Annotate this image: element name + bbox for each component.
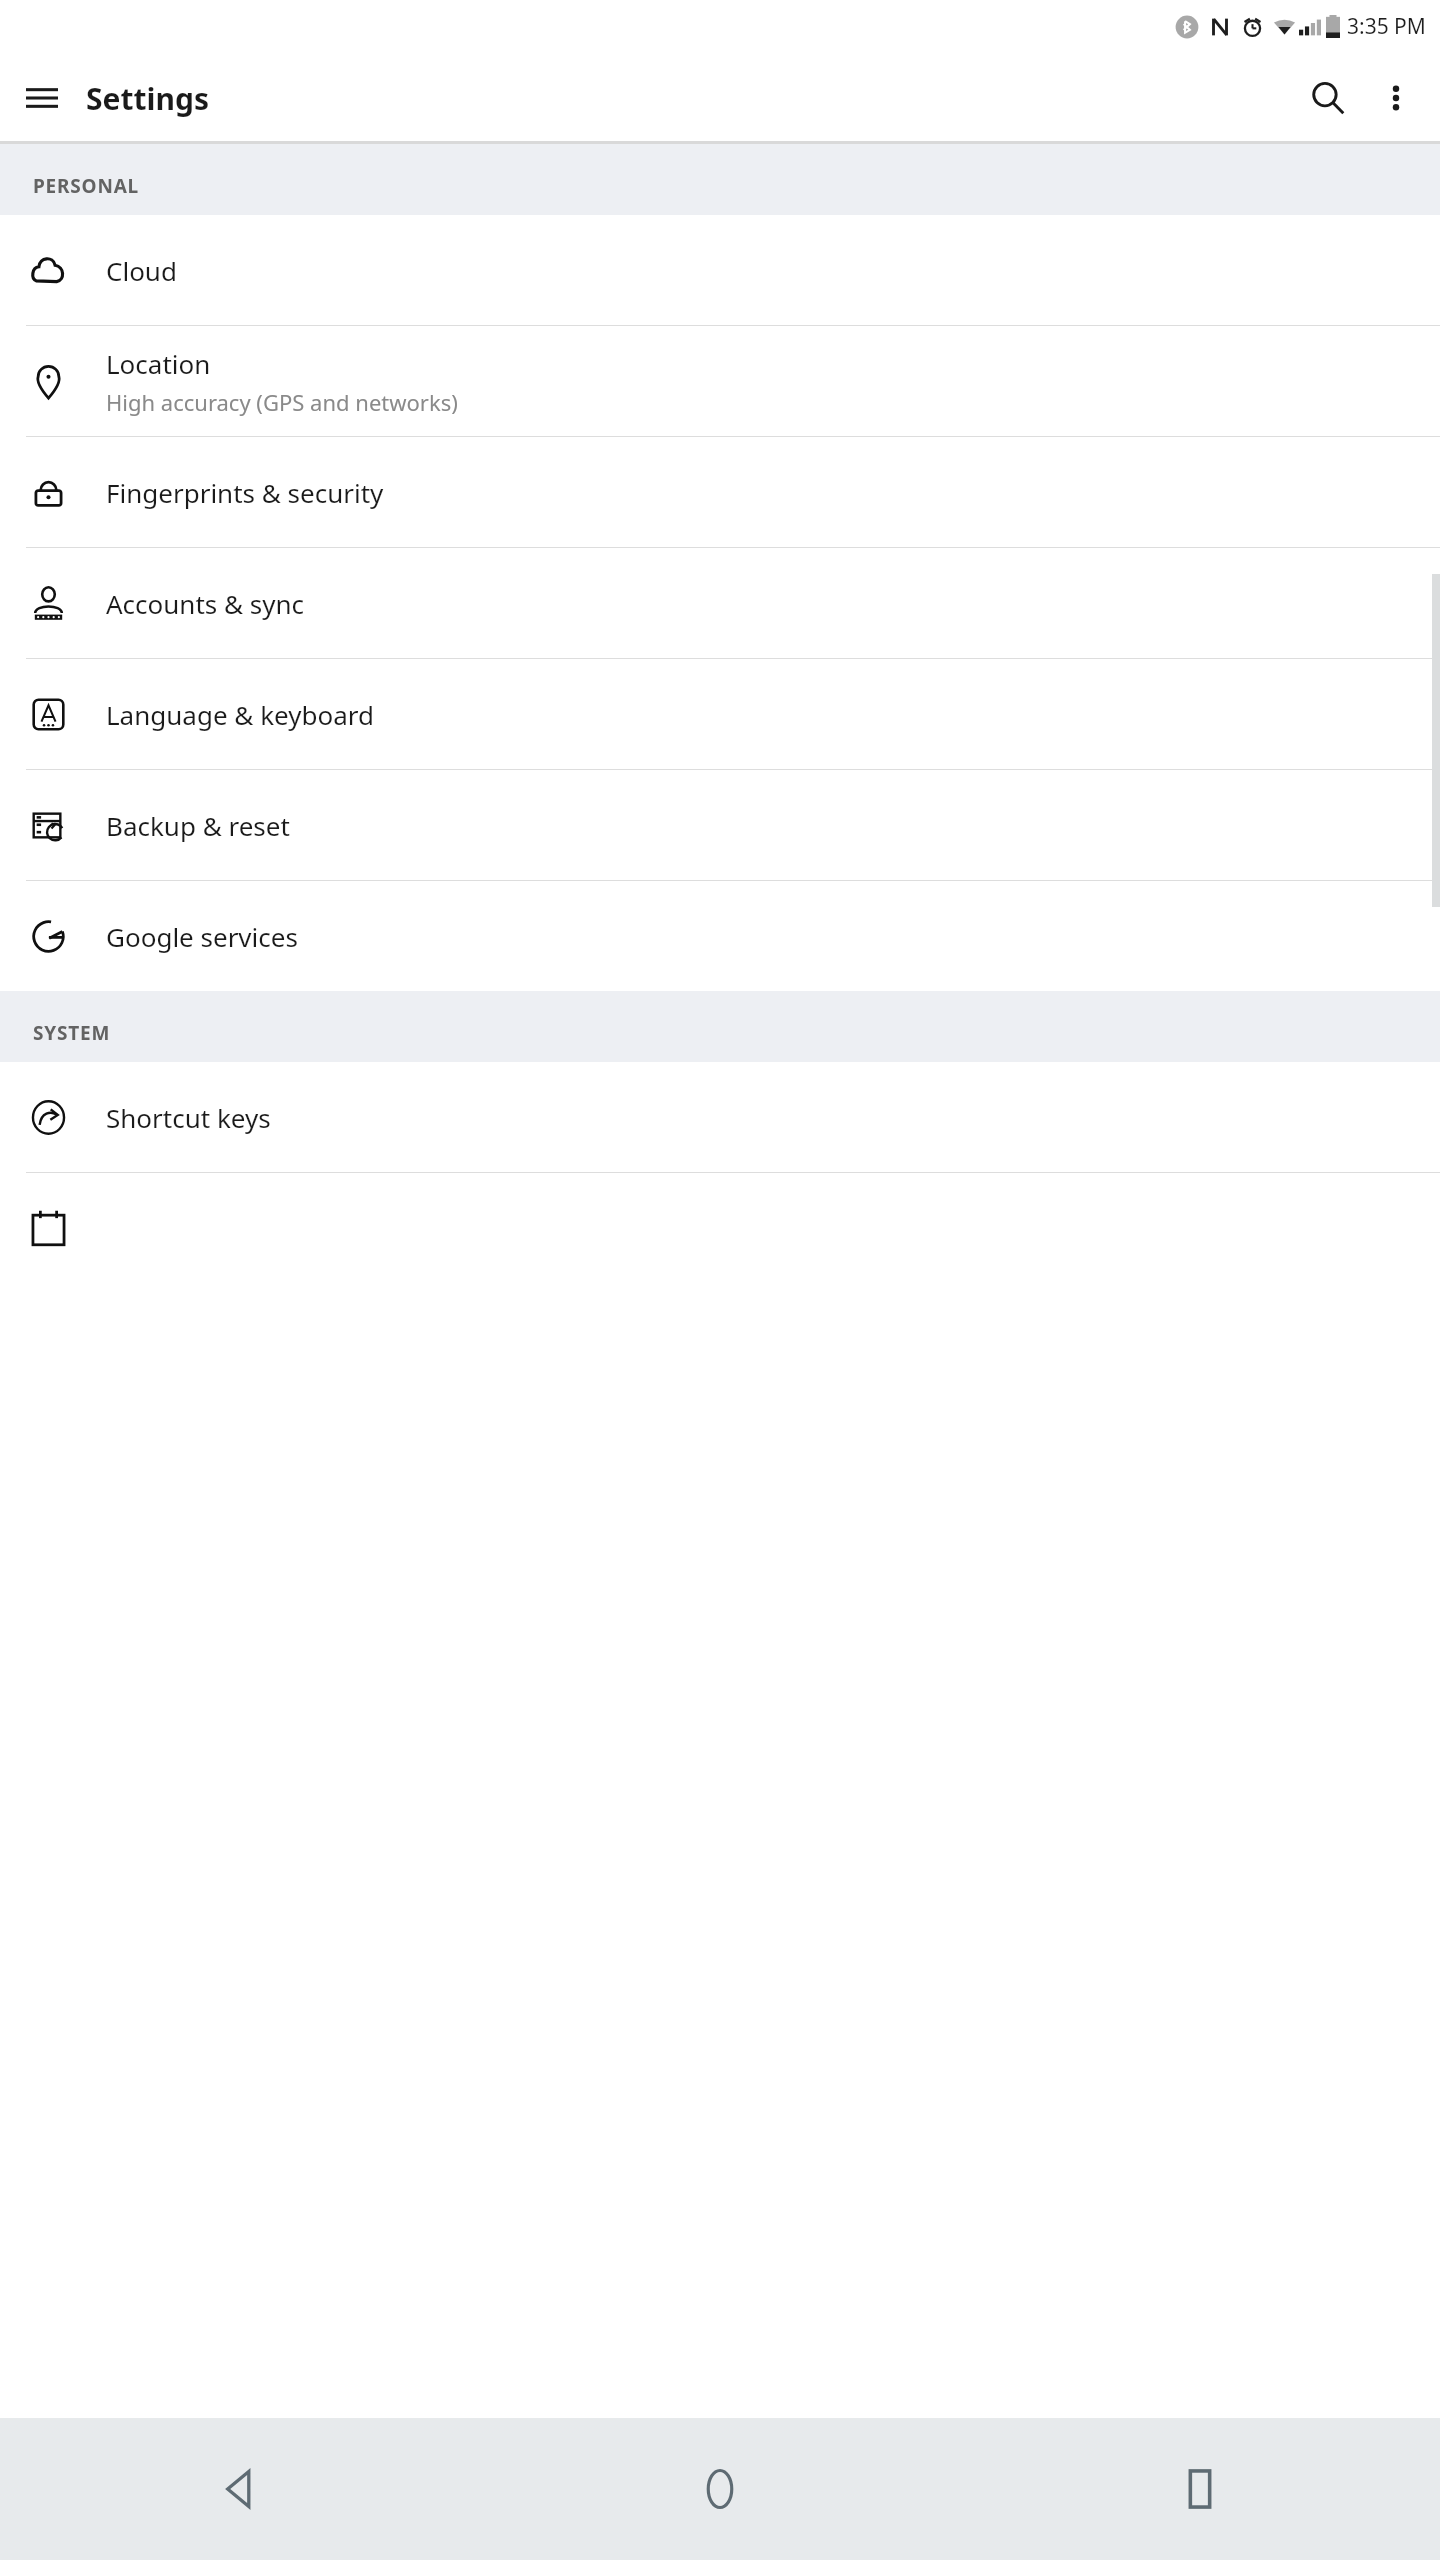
button[interactable]: Home [480, 2418, 960, 2560]
staticText: Cloud [106, 253, 177, 288]
staticText: Fingerprints & security [106, 475, 384, 510]
staticText: Location [106, 346, 211, 381]
staticText: Shortcut keys [106, 1100, 271, 1135]
button[interactable]: Recent apps [960, 2418, 1440, 2560]
button[interactable] [0, 1173, 1440, 1283]
button[interactable]: Navigation drawer [14, 70, 70, 126]
button[interactable]: Google services [0, 881, 1440, 991]
button[interactable]: Backup & reset [0, 770, 1440, 880]
button[interactable]: Search [1292, 62, 1364, 134]
button[interactable]: Language & keyboard [0, 659, 1440, 769]
staticText: Settings [86, 78, 209, 119]
staticText: PERSONAL [33, 173, 140, 199]
staticText: Language & keyboard [106, 697, 374, 732]
staticText: SYSTEM [33, 1020, 111, 1046]
button[interactable]: Location [0, 326, 1440, 436]
staticText: High accuracy (GPS and networks) [106, 387, 458, 417]
staticText: Accounts & sync [106, 586, 305, 621]
button[interactable]: Back [0, 2418, 480, 2560]
staticText: Backup & reset [106, 808, 290, 843]
staticText: Google services [106, 919, 298, 954]
button[interactable]: Accounts & sync [0, 548, 1440, 658]
button[interactable]: Shortcut keys [0, 1062, 1440, 1172]
button[interactable]: Fingerprints & security [0, 437, 1440, 547]
button[interactable]: More options [1364, 66, 1428, 130]
button[interactable]: Cloud [0, 215, 1440, 325]
staticText: 3:35 PM [1347, 12, 1426, 41]
